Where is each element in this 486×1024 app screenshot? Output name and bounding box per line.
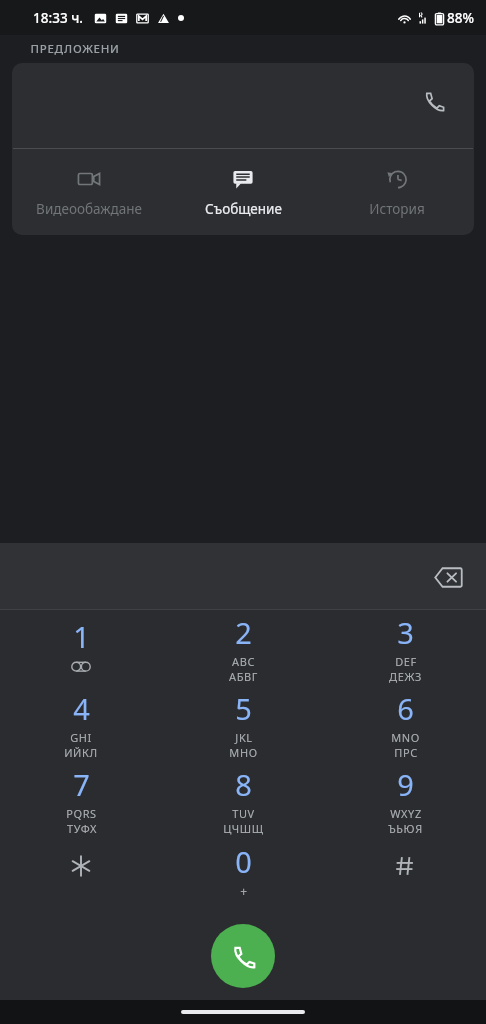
button[interactable]: 0 [162,838,324,914]
staticText: 18:33 ч. [33,9,83,27]
staticText: JKL [235,730,253,745]
staticText: 0 [235,842,252,881]
staticText: 8 [235,765,252,804]
staticText: WXYZ [390,806,422,821]
button[interactable]: 1 [0,610,162,686]
staticText: 4 [73,689,90,728]
staticText: 2 [235,613,252,652]
button[interactable]: 2 [162,610,324,686]
staticText: MNO [391,730,420,745]
staticText: ИЙКЛ [64,745,98,760]
staticText: ТУФХ [67,821,97,836]
button[interactable] [0,838,162,914]
staticText: 1 [73,617,90,656]
staticText: 3 [397,613,414,652]
button[interactable]: 8 [162,762,324,838]
button[interactable]: 7 [0,762,162,838]
staticText: Съобщение [205,200,282,218]
staticText: 88% [447,9,474,27]
staticText: 6 [397,689,414,728]
button[interactable]: 4 [0,686,162,762]
staticText: TUV [232,806,255,821]
staticText: + [240,883,248,899]
button[interactable]: Видеообаждане [12,149,166,235]
button[interactable]: 9 [324,762,486,838]
button[interactable] [324,838,486,914]
staticText: ABC [232,654,255,669]
staticText: DEF [395,654,417,669]
staticText: GHI [70,730,92,745]
button[interactable]: Call [414,81,454,121]
button[interactable]: Backspace [424,553,472,601]
staticText: ЪЬЮЯ [388,821,423,836]
button[interactable]: Съобщение [166,149,320,235]
button[interactable]: Call [211,924,275,988]
staticText: 7 [73,765,90,804]
staticText: ЦЧШЩ [223,821,264,836]
button[interactable]: История [320,149,474,235]
staticText: АБВГ [229,669,258,684]
staticText: История [369,200,425,218]
button[interactable]: 3 [324,610,486,686]
button[interactable]: Call [12,63,474,235]
button[interactable]: 5 [162,686,324,762]
staticText: PQRS [66,806,97,821]
staticText: ПРЕДЛОЖЕНИ [30,41,120,57]
staticText: Видеообаждане [36,200,142,218]
staticText: МНО [229,745,258,760]
staticText: 9 [397,765,414,804]
staticText: ДЕЖЗ [389,669,422,684]
button[interactable]: 6 [324,686,486,762]
staticText: 5 [235,689,252,728]
staticText: ПРС [394,745,418,760]
